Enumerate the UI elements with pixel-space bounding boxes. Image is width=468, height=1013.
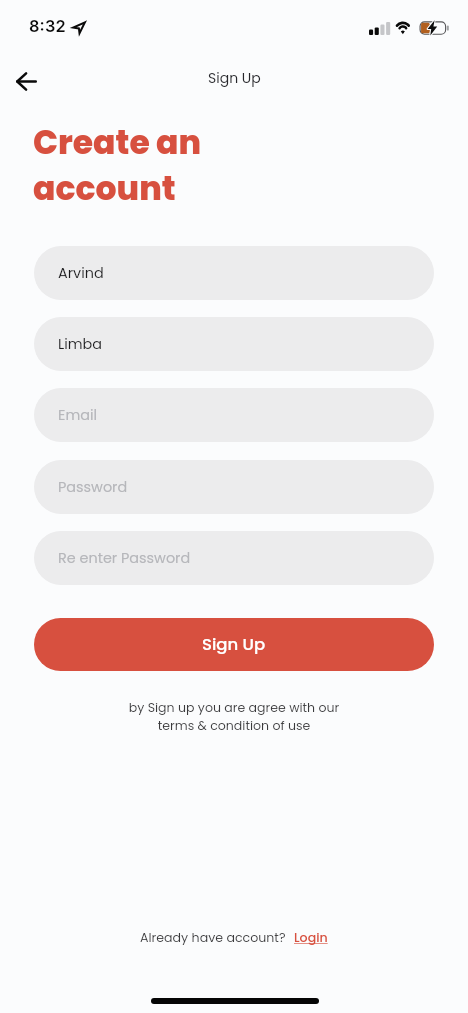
staticText: Limba (58, 334, 103, 354)
staticText: 8:32 (29, 16, 66, 36)
button[interactable]: Back (4, 59, 48, 103)
staticText: Sign Up (208, 68, 261, 88)
button[interactable]: Password (34, 460, 434, 514)
staticText: Already have account? (140, 929, 286, 947)
staticText: Re enter Password (58, 548, 191, 568)
staticText: Email (58, 405, 98, 425)
staticText: Sign Up (202, 633, 266, 656)
button[interactable]: Re enter Password (34, 531, 434, 585)
staticText: by Sign up you are agree with our terms … (0, 699, 468, 734)
button[interactable]: Email (34, 388, 434, 442)
staticText: Arvind (58, 263, 104, 283)
button[interactable]: Limba (34, 317, 434, 371)
staticText: Password (58, 477, 128, 497)
button[interactable]: Arvind (34, 246, 434, 300)
button[interactable]: Sign Up (34, 618, 434, 671)
button[interactable]: Login (294, 929, 328, 947)
staticText: Create an account (33, 119, 202, 211)
